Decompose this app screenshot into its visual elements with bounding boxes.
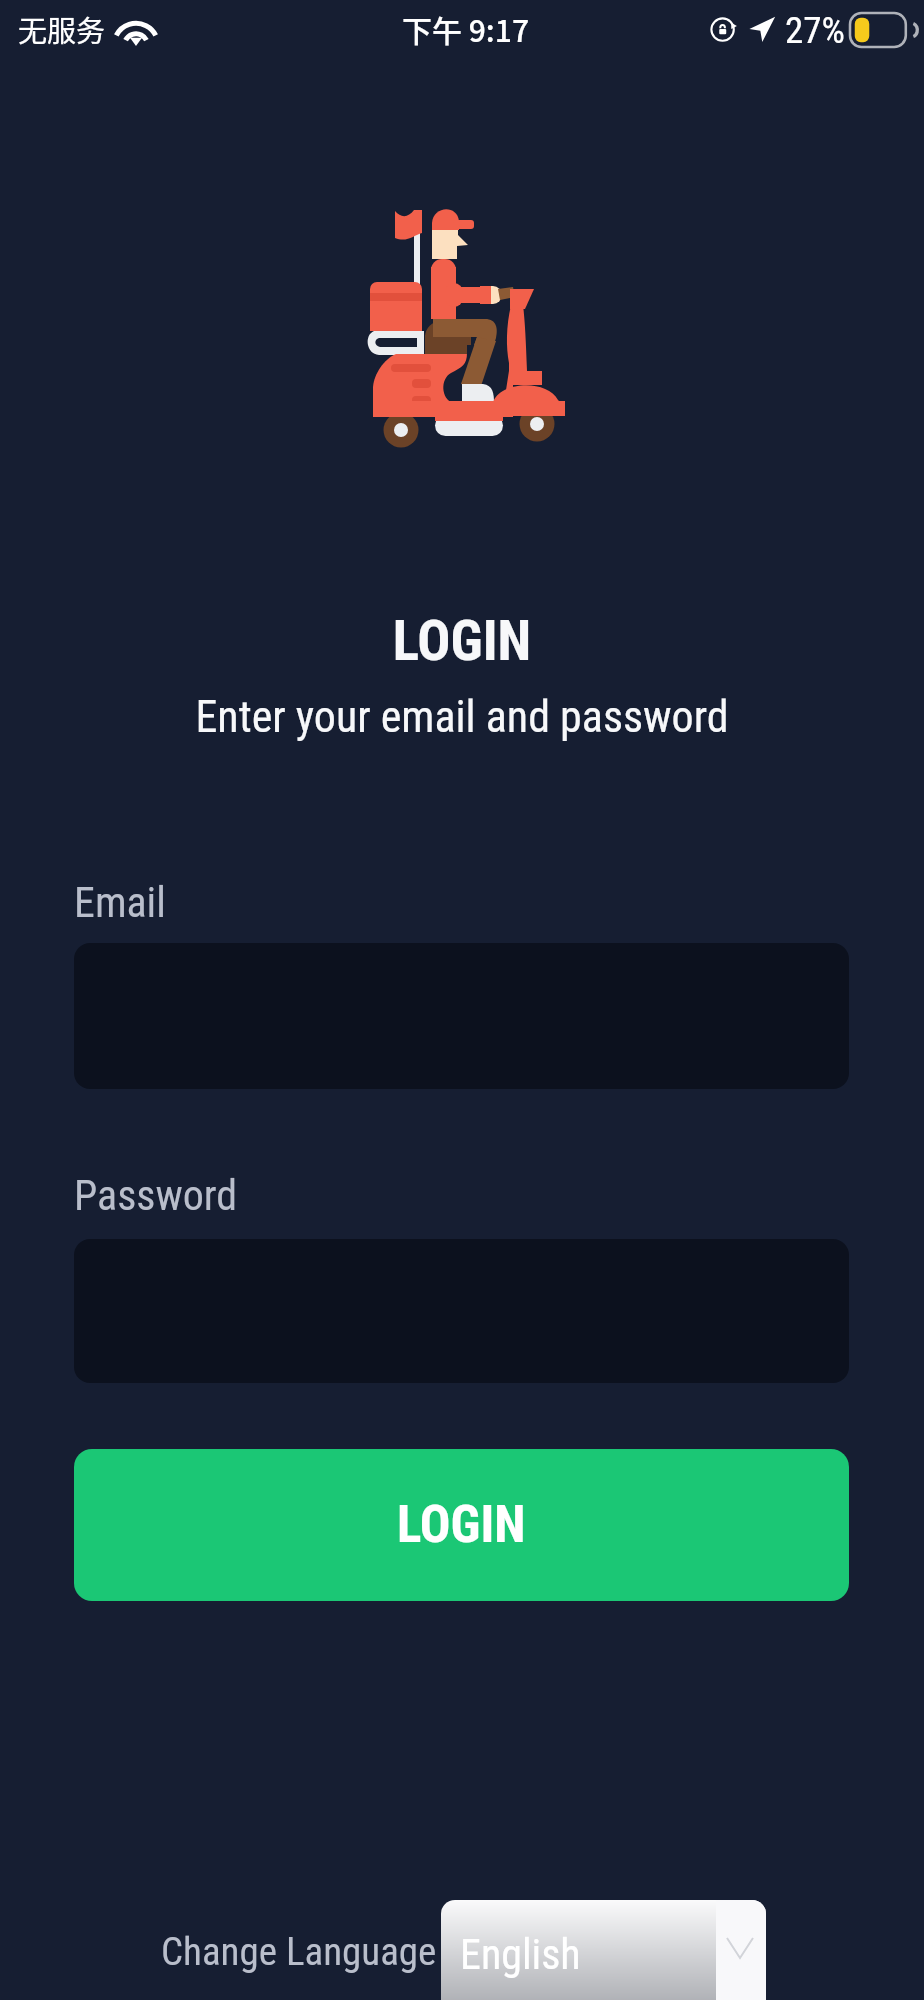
other: Open language menu xyxy=(727,1938,753,1958)
other: Battery 27 percent xyxy=(850,13,912,47)
other: Wi-Fi xyxy=(119,20,153,46)
staticText: LOGIN xyxy=(0,609,924,673)
staticText: English xyxy=(460,1930,581,1979)
staticText: Email xyxy=(74,878,166,927)
button[interactable]: LOGIN xyxy=(74,1449,849,1601)
staticText: Enter your email and password xyxy=(0,691,924,743)
staticText: Password xyxy=(74,1171,238,1220)
staticText: 无服务 xyxy=(18,8,106,50)
other: Rotation lock xyxy=(710,15,738,45)
staticText: LOGIN xyxy=(397,1495,526,1555)
button[interactable]: English xyxy=(441,1900,766,2000)
staticText: 27% xyxy=(785,9,845,52)
other: Location xyxy=(748,15,776,44)
staticText: Change Language xyxy=(161,1929,437,1975)
staticText: 下午 9:17 xyxy=(402,7,529,50)
